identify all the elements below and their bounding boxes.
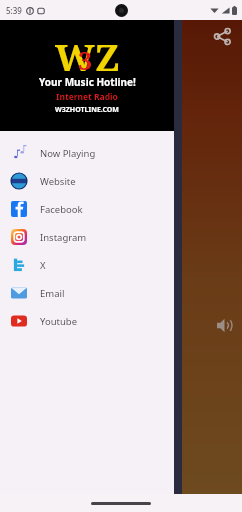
staticText: Z <box>95 31 120 75</box>
staticText: Instagram <box>40 231 87 244</box>
staticText: 5:39 <box>6 5 22 16</box>
button[interactable]: Now Playing <box>0 139 174 167</box>
staticText: Website <box>40 175 76 188</box>
button[interactable]: Facebook <box>0 195 174 223</box>
staticText: Your Music Hotline! <box>39 75 136 89</box>
button[interactable]: Share <box>208 22 236 50</box>
staticText: Youtube <box>40 315 78 328</box>
button[interactable]: Youtube <box>0 307 174 335</box>
button[interactable]: Volume <box>210 311 238 339</box>
staticText: Now Playing <box>40 147 96 160</box>
button[interactable]: X <box>0 251 174 279</box>
staticText: Internet Radio <box>56 91 118 103</box>
staticText: X <box>40 259 46 272</box>
staticText: 3 <box>78 43 93 77</box>
staticText: Facebook <box>40 203 83 216</box>
staticText: Email <box>40 287 65 300</box>
button[interactable]: Website <box>0 167 174 195</box>
staticText: W3ZHOTLINE.COM <box>55 105 119 115</box>
button[interactable]: Instagram <box>0 223 174 251</box>
button[interactable]: Email <box>0 279 174 307</box>
staticText: W <box>55 31 95 75</box>
